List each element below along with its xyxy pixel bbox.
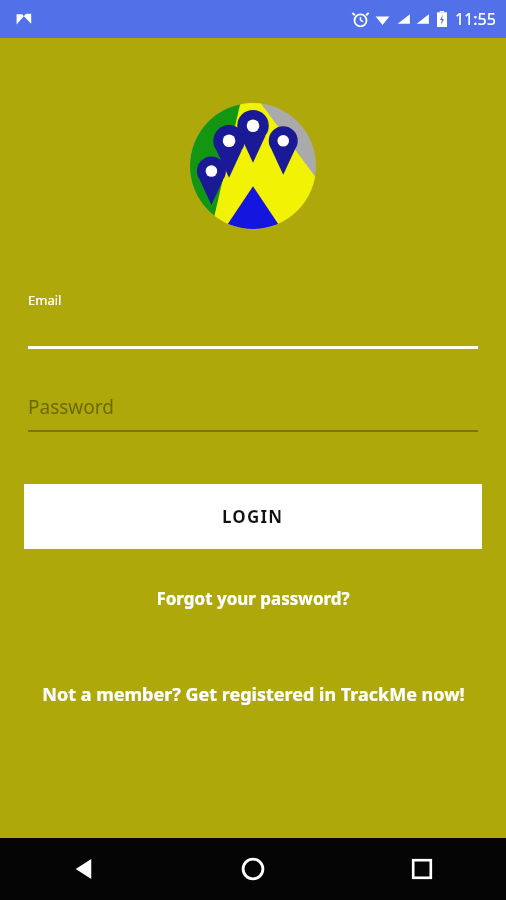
button[interactable]: Password bbox=[28, 394, 478, 432]
button[interactable]: Recent apps bbox=[337, 838, 506, 900]
staticText: Not a member? Get registered in TrackMe … bbox=[42, 682, 465, 707]
staticText: LOGIN bbox=[222, 505, 284, 528]
button[interactable]: Not a member? Get registered in TrackMe … bbox=[0, 682, 506, 707]
staticText: Email bbox=[28, 291, 62, 309]
button[interactable]: LOGIN bbox=[24, 484, 482, 549]
button[interactable]: Back bbox=[0, 838, 168, 900]
staticText: Forgot your password? bbox=[156, 587, 350, 610]
button[interactable]: Forgot your password? bbox=[0, 587, 506, 610]
button[interactable]: Home bbox=[168, 838, 337, 900]
button[interactable]: Email bbox=[28, 291, 478, 349]
staticText: 11:55 bbox=[455, 8, 496, 30]
staticText: Password bbox=[28, 394, 114, 420]
